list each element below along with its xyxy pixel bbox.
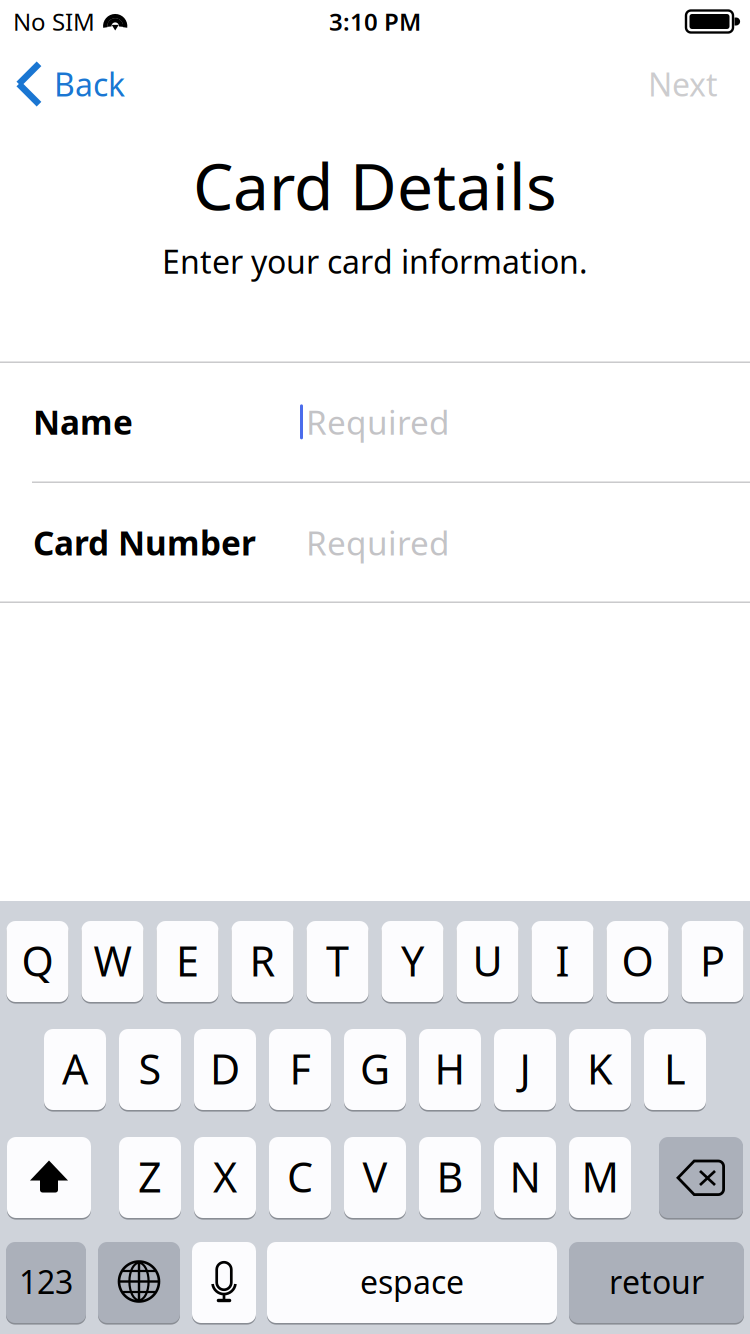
- button[interactable]: W: [81, 920, 143, 1003]
- staticText: Enter your card information.: [162, 240, 588, 282]
- staticText: G: [360, 1041, 390, 1096]
- button[interactable]: F: [269, 1028, 331, 1111]
- staticText: C: [287, 1149, 313, 1204]
- button[interactable]: B: [419, 1136, 481, 1219]
- staticText: F: [289, 1041, 310, 1096]
- staticText: Card Details: [193, 143, 557, 228]
- staticText: Name: [33, 400, 133, 444]
- button[interactable]: E: [156, 920, 218, 1003]
- button[interactable]: N: [494, 1136, 556, 1219]
- staticText: No SIM: [13, 6, 95, 37]
- staticText: 123: [19, 1260, 73, 1303]
- button[interactable]: Dictate: [192, 1241, 256, 1324]
- staticText: Q: [21, 933, 53, 988]
- button[interactable]: U: [456, 920, 518, 1003]
- staticText: K: [587, 1041, 613, 1096]
- button[interactable]: I: [531, 920, 593, 1003]
- button[interactable]: X: [194, 1136, 256, 1219]
- button[interactable]: D: [194, 1028, 256, 1111]
- staticText: W: [93, 933, 131, 988]
- staticText: Z: [138, 1149, 162, 1204]
- button[interactable]: G: [344, 1028, 406, 1111]
- button[interactable]: R: [231, 920, 293, 1003]
- staticText: S: [138, 1041, 161, 1096]
- button[interactable]: espace: [267, 1241, 557, 1324]
- staticText: A: [62, 1041, 88, 1096]
- button[interactable]: T: [306, 920, 368, 1003]
- button[interactable]: A: [44, 1028, 106, 1111]
- button[interactable]: Q: [6, 920, 68, 1003]
- button[interactable]: Next: [632, 43, 750, 125]
- staticText: O: [621, 933, 653, 988]
- staticText: Card Number: [33, 520, 256, 565]
- button[interactable]: Y: [381, 920, 443, 1003]
- staticText: N: [509, 1149, 540, 1204]
- button[interactable]: Back: [0, 43, 141, 125]
- staticText: Required: [306, 520, 450, 565]
- staticText: Y: [401, 933, 424, 988]
- staticText: Required: [306, 400, 450, 444]
- button[interactable]: Z: [119, 1136, 181, 1219]
- button[interactable]: S: [119, 1028, 181, 1111]
- button[interactable]: O: [606, 920, 668, 1003]
- staticText: D: [210, 1041, 240, 1096]
- staticText: T: [326, 933, 349, 988]
- staticText: R: [249, 933, 275, 988]
- staticText: Back: [54, 63, 125, 105]
- staticText: I: [555, 933, 569, 988]
- button[interactable]: C: [269, 1136, 331, 1219]
- staticText: Next: [648, 63, 718, 105]
- button[interactable]: J: [494, 1028, 556, 1111]
- staticText: L: [664, 1041, 686, 1096]
- staticText: V: [362, 1149, 387, 1204]
- staticText: U: [472, 933, 502, 988]
- button[interactable]: H: [419, 1028, 481, 1111]
- button[interactable]: L: [644, 1028, 706, 1111]
- button[interactable]: V: [344, 1136, 406, 1219]
- staticText: M: [581, 1149, 618, 1204]
- staticText: J: [519, 1041, 530, 1096]
- staticText: espace: [360, 1260, 464, 1303]
- staticText: H: [434, 1041, 465, 1096]
- staticText: 3:10 PM: [329, 6, 421, 37]
- button[interactable]: Shift: [7, 1136, 91, 1219]
- staticText: retour: [609, 1260, 704, 1303]
- button[interactable]: K: [569, 1028, 631, 1111]
- staticText: P: [700, 933, 725, 988]
- staticText: E: [176, 933, 199, 988]
- button[interactable]: retour: [569, 1241, 744, 1324]
- button[interactable]: Next keyboard: [98, 1241, 180, 1324]
- button[interactable]: Delete: [659, 1136, 743, 1219]
- button[interactable]: P: [681, 920, 743, 1003]
- staticText: X: [213, 1149, 237, 1204]
- staticText: B: [436, 1149, 463, 1204]
- button[interactable]: M: [569, 1136, 631, 1219]
- button[interactable]: 123: [6, 1241, 86, 1324]
